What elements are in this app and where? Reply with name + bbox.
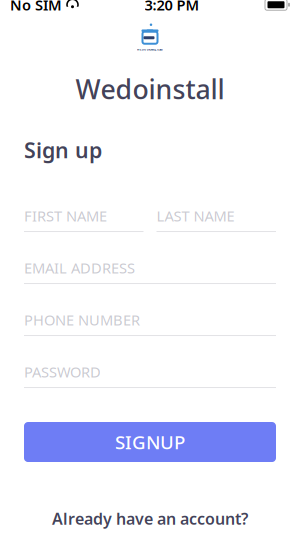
staticText: Wedoinstall — [75, 71, 224, 107]
staticText: PASSWORD — [24, 362, 101, 381]
button[interactable]: SIGNUP — [24, 422, 276, 462]
staticText: No SIM — [10, 0, 62, 14]
staticText: Sign up — [24, 136, 102, 164]
staticText: FIRST NAME — [24, 206, 107, 225]
staticText: Already have an account? — [52, 508, 248, 529]
staticText: PHONE NUMBER — [24, 310, 140, 329]
staticText: WE DO INSTALL USER — [137, 48, 163, 51]
staticText: SIGNUP — [115, 430, 185, 454]
staticText: EMAIL ADDRESS — [24, 258, 135, 277]
staticText: LAST NAME — [156, 206, 234, 225]
button[interactable]: Already have an account? — [52, 508, 248, 529]
staticText: 3:20 PM — [144, 0, 199, 14]
